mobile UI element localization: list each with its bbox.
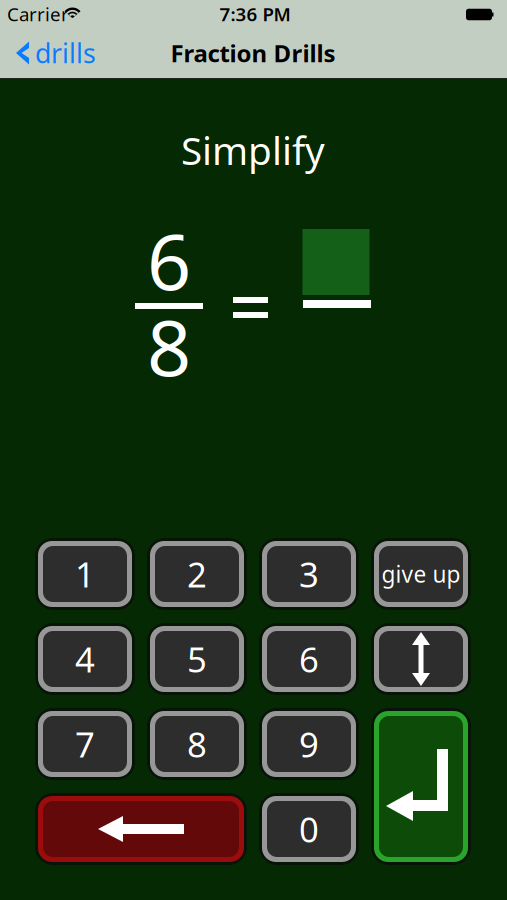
button[interactable]: 8 (147, 708, 247, 780)
staticText: give up (381, 559, 460, 589)
button[interactable]: give up (371, 538, 471, 610)
staticText: 8 (147, 295, 191, 397)
staticText: 7:36 PM (219, 2, 290, 26)
button[interactable]: 4 (35, 623, 135, 695)
staticText: 9 (299, 721, 319, 767)
button[interactable]: 1 (35, 538, 135, 610)
staticText: 8 (187, 721, 207, 767)
button[interactable]: Backspace (35, 793, 247, 865)
button[interactable]: Enter (371, 708, 471, 865)
staticText: 4 (75, 636, 95, 682)
button[interactable]: Switch numerator/denominator (371, 623, 471, 695)
button[interactable]: Back to drills (16, 35, 96, 71)
button[interactable]: 9 (259, 708, 359, 780)
staticText: Simplify (181, 124, 325, 176)
staticText: 2 (187, 551, 207, 597)
staticText: 6 (147, 209, 191, 311)
button[interactable]: 2 (147, 538, 247, 610)
staticText: 1 (75, 551, 95, 597)
staticText: 0 (299, 806, 319, 852)
button[interactable]: 6 (259, 623, 359, 695)
staticText: Fraction Drills (170, 37, 335, 69)
button[interactable]: 0 (259, 793, 359, 865)
button[interactable]: 7 (35, 708, 135, 780)
staticText: 3 (299, 551, 319, 597)
staticText: 7 (75, 721, 95, 767)
staticText: 5 (187, 636, 207, 682)
staticText: drills (35, 35, 96, 71)
staticText: 6 (299, 636, 319, 682)
button[interactable]: 5 (147, 623, 247, 695)
button[interactable]: 3 (259, 538, 359, 610)
staticText: Carrier (7, 2, 69, 26)
